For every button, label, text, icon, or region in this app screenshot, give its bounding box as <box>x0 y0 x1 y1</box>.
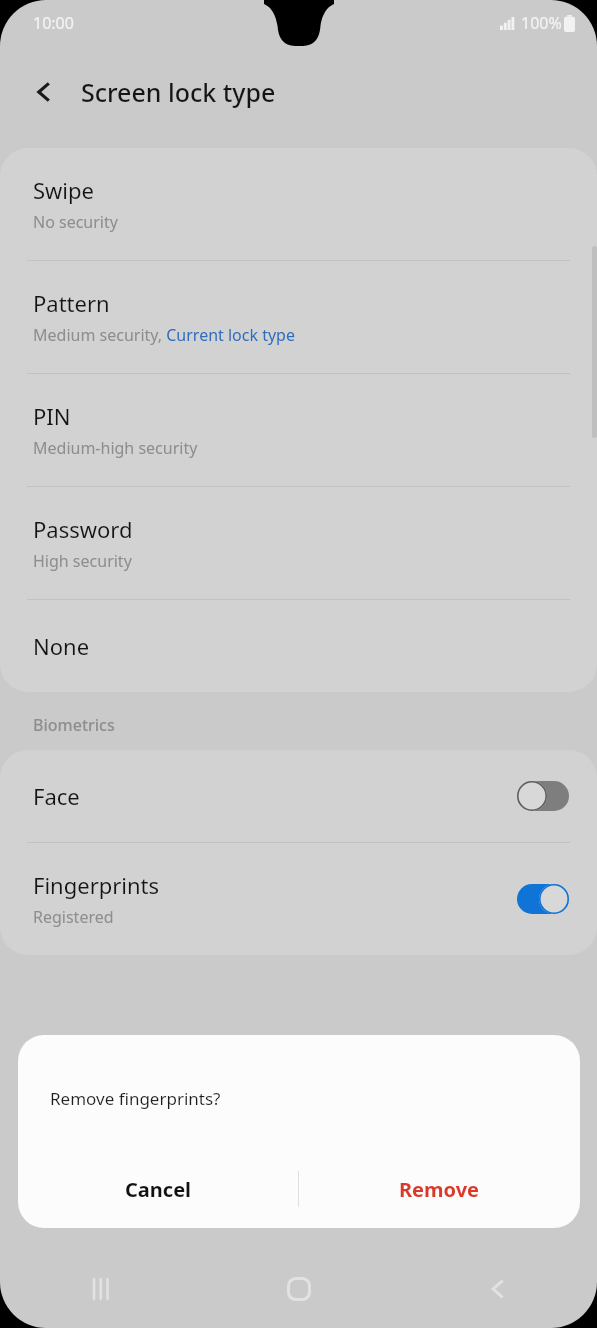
staticText: Fingerprints <box>33 870 160 900</box>
button[interactable]: On <box>517 884 569 914</box>
staticText: Medium security, Current lock type <box>33 324 295 346</box>
staticText: Swipe <box>33 175 94 205</box>
button[interactable]: Back <box>398 1250 597 1328</box>
staticText: Biometrics <box>33 714 115 736</box>
staticText: PIN <box>33 401 71 431</box>
staticText: Screen lock type <box>81 75 276 109</box>
staticText: Cancel <box>125 1176 192 1203</box>
staticText: 10:00 <box>33 12 74 34</box>
button[interactable]: Swipe <box>0 148 597 260</box>
staticText: Medium-high security <box>33 437 198 459</box>
button[interactable]: Face <box>0 750 597 842</box>
staticText: None <box>33 631 90 661</box>
button[interactable]: Remove <box>299 1150 580 1228</box>
staticText: High security <box>33 550 132 572</box>
button[interactable]: Back <box>18 66 70 118</box>
button[interactable]: None <box>0 600 597 692</box>
staticText: Remove fingerprints? <box>50 1087 221 1110</box>
button[interactable]: Pattern <box>0 261 597 373</box>
button[interactable]: Password <box>0 487 597 599</box>
staticText: Remove <box>399 1176 480 1203</box>
button[interactable]: Recents <box>0 1250 199 1328</box>
staticText: Face <box>33 781 80 811</box>
button[interactable]: Fingerprints <box>0 843 597 955</box>
button[interactable]: Cancel <box>18 1150 298 1228</box>
staticText: No security <box>33 211 118 233</box>
staticText: Registered <box>33 906 114 928</box>
button[interactable]: Off <box>517 781 569 811</box>
staticText: 100% <box>521 12 562 34</box>
staticText: Password <box>33 514 133 544</box>
button[interactable]: PIN <box>0 374 597 486</box>
staticText: Pattern <box>33 288 110 318</box>
